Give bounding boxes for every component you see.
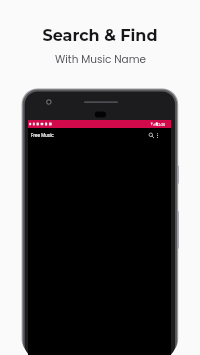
button[interactable]: More options [153,131,162,140]
button[interactable]: Search [147,131,156,140]
staticText: With Music Name [55,52,146,67]
staticText: Search & Find [42,26,158,46]
staticText: 12:30 [157,122,166,127]
staticText: Free Music [31,132,54,138]
